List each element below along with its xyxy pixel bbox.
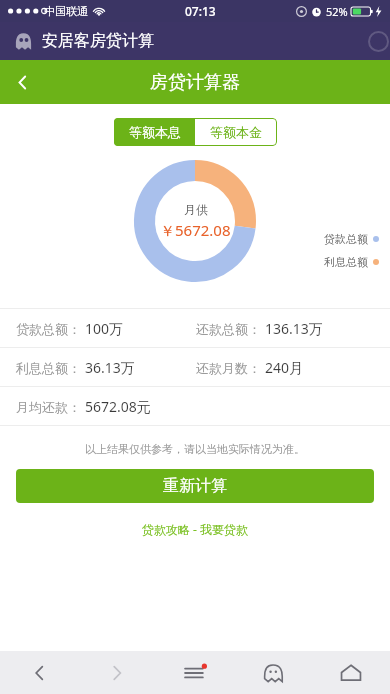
staticText: 月供: [184, 202, 208, 217]
button[interactable]: 重新计算: [16, 469, 374, 503]
staticText: 136.13万: [265, 319, 323, 338]
button[interactable]: 等额本息: [114, 118, 195, 146]
button[interactable]: Menu: [156, 651, 234, 694]
staticText: 贷款总额：: [16, 321, 81, 337]
button[interactable]: Ghost: [234, 651, 312, 694]
staticText: 52%: [326, 4, 348, 19]
staticText: ￥5672.08: [160, 220, 231, 240]
staticText: 还款月数：: [196, 360, 261, 376]
button[interactable]: Back: [0, 651, 78, 694]
staticText: 中国联通: [44, 4, 88, 18]
staticText: 07:13: [185, 3, 216, 19]
staticText: 重新计算: [163, 476, 227, 496]
button[interactable]: Back: [0, 60, 44, 104]
staticText: 100万: [85, 319, 124, 338]
staticText: 还款总额：: [196, 321, 261, 337]
button[interactable]: 等额本金: [195, 118, 277, 146]
staticText: 240月: [265, 358, 304, 377]
staticText: 利息总额：: [16, 360, 81, 376]
staticText: 房贷计算器: [150, 71, 240, 94]
staticText: 利息总额: [324, 255, 368, 269]
staticText: 以上结果仅供参考，请以当地实际情况为准。: [0, 442, 390, 456]
staticText: 月均还款：: [16, 399, 81, 415]
staticText: 贷款总额: [324, 232, 368, 246]
button[interactable]: Home: [312, 651, 390, 694]
staticText: 安居客房贷计算: [42, 31, 154, 51]
staticText: 等额本息: [129, 124, 181, 140]
staticText: 等额本金: [210, 124, 262, 140]
button[interactable]: Search: [360, 23, 390, 59]
button[interactable]: Forward: [78, 651, 156, 694]
button[interactable]: 贷款攻略 - 我要贷款: [136, 515, 255, 543]
staticText: 5672.08元: [85, 397, 151, 416]
staticText: 贷款攻略 - 我要贷款: [142, 521, 249, 537]
staticText: 36.13万: [85, 358, 135, 377]
